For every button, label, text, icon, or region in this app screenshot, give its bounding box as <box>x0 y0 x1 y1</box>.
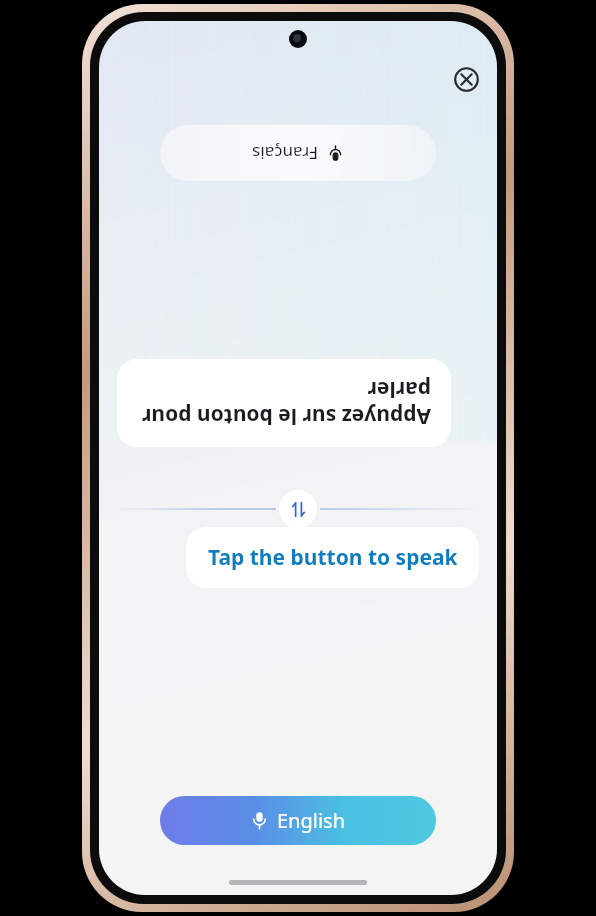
button[interactable]: Français <box>160 125 436 181</box>
staticText: English <box>277 807 346 834</box>
button[interactable]: Appuyez sur le bouton pour parler <box>117 359 451 447</box>
staticText: Tap the button to speak <box>208 543 458 572</box>
button[interactable]: Swap languages <box>279 490 317 528</box>
button[interactable]: Tap the button to speak <box>186 527 479 588</box>
button[interactable]: English <box>160 796 436 845</box>
staticText: Appuyez sur le bouton pour parler <box>137 376 431 431</box>
staticText: Français <box>252 142 318 165</box>
button[interactable]: Close <box>447 60 485 98</box>
